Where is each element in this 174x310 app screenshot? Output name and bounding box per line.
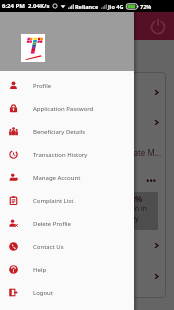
staticText: Fund Transfer [14,117,67,128]
staticText: 2.04K/s [28,2,50,10]
staticText: Profile [33,82,52,90]
staticText: Returns on in [103,204,148,214]
button[interactable]: Application Password [0,97,134,120]
button[interactable]: Profile [0,74,134,97]
button[interactable]: Help [0,258,134,281]
staticText: Know More [14,271,57,282]
staticText: 72% [140,3,152,10]
staticText: Contact Us [33,243,64,251]
button[interactable]: Know More [14,261,160,291]
button[interactable]: Account Summary [14,78,160,107]
staticText: Apply Now [14,240,55,251]
staticText: Manage Account [33,174,81,182]
staticText: Beneficiary Details [33,128,86,136]
button[interactable]: Power [146,14,170,38]
staticText: Get 9.02% [103,193,143,204]
staticText: Delete Profile [33,220,71,228]
button[interactable]: Manage Account [0,166,134,189]
button[interactable]: Fund Transfer [14,108,160,137]
button[interactable]: Logout [0,281,134,304]
staticText: Application Password [33,105,94,113]
button[interactable]: Complaint List [0,189,134,212]
button[interactable]: Contact Us [0,235,134,258]
button[interactable]: Transaction History [0,143,134,166]
staticText: Complaint List [33,197,74,205]
staticText: 6:24 PM [2,2,25,10]
staticText: Jio 4G [108,3,124,10]
staticText: Pay Bills & Recharge Servic · Create M..… [14,147,162,158]
staticText: Account Summary [14,87,83,98]
button[interactable]: Beneficiary Details [0,120,134,143]
staticText: Logout [33,289,53,297]
button[interactable]: Delete Profile [0,212,134,235]
staticText: Reliance [75,3,99,10]
staticText: Transaction History [33,151,88,159]
staticText: Help [33,266,47,274]
button[interactable]: Apply Now [14,230,160,260]
staticText: just 10 day [103,214,139,224]
staticText: ••• [146,174,157,186]
